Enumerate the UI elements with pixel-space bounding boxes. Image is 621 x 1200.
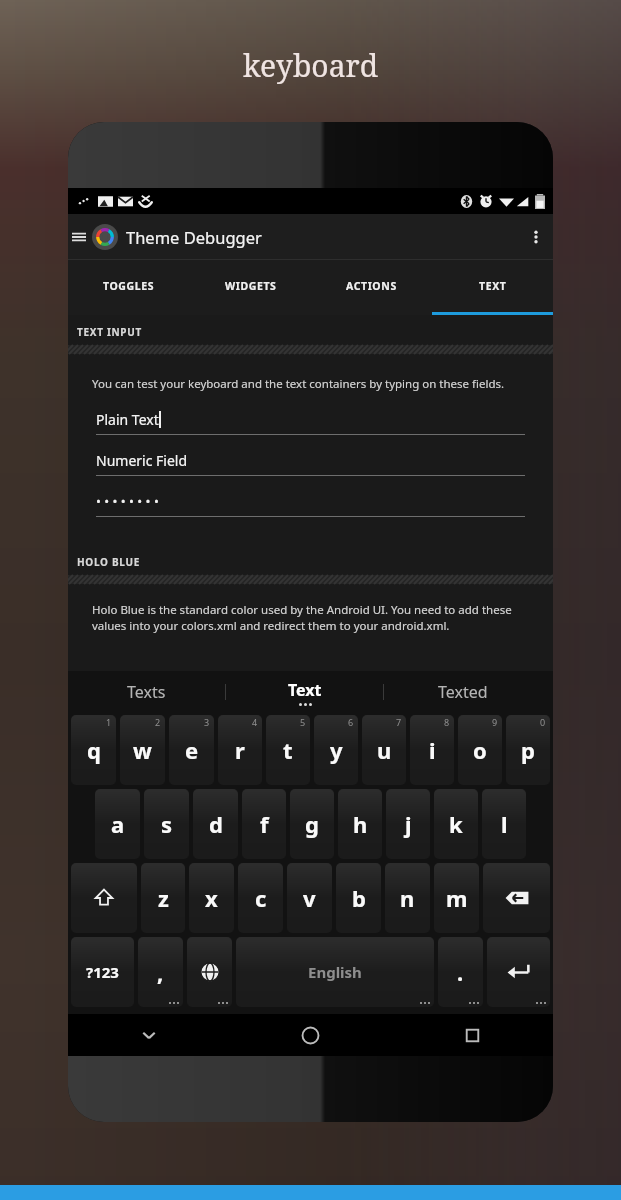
staticText: ACTIONS	[346, 279, 397, 293]
staticText: q	[87, 735, 101, 765]
staticText: TEXT	[479, 279, 507, 293]
staticText: k	[449, 809, 463, 839]
staticText: 1	[106, 716, 112, 728]
staticText: u	[377, 735, 392, 765]
button[interactable]: k	[434, 789, 478, 859]
button[interactable]: b	[336, 863, 381, 933]
button[interactable]: • • • • • • • •	[96, 486, 525, 516]
button[interactable]: Text	[226, 671, 383, 713]
staticText: m	[446, 883, 468, 913]
staticText: 5	[300, 716, 306, 728]
button[interactable]: x	[189, 863, 234, 933]
button[interactable]: Recents	[391, 1014, 553, 1056]
button[interactable]: s	[144, 789, 189, 859]
staticText: Theme Debugger	[126, 226, 262, 248]
staticText: Plain Text	[96, 410, 159, 429]
staticText: v	[303, 883, 316, 913]
staticText: y	[330, 735, 343, 765]
button[interactable]: z	[141, 863, 185, 933]
button[interactable]: j	[386, 789, 430, 859]
button[interactable]: Navigation drawer	[68, 214, 90, 259]
button[interactable]: 6	[314, 715, 358, 785]
button[interactable]: 5	[266, 715, 310, 785]
staticText: j	[405, 809, 412, 839]
button[interactable]: a	[95, 789, 140, 859]
button[interactable]: Backspace	[483, 863, 550, 933]
button[interactable]: v	[287, 863, 332, 933]
button[interactable]: f	[242, 789, 286, 859]
button[interactable]: n	[385, 863, 430, 933]
button[interactable]: g	[290, 789, 334, 859]
staticText: HOLO BLUE	[77, 555, 141, 569]
button[interactable]: TOGGLES	[68, 260, 190, 312]
staticText: p	[521, 735, 535, 765]
button[interactable]: m	[434, 863, 479, 933]
staticText: r	[235, 735, 245, 765]
button[interactable]: Enter	[487, 937, 550, 1007]
staticText: g	[305, 809, 319, 839]
staticText: a	[111, 809, 125, 839]
staticText: b	[352, 883, 366, 913]
staticText: z	[158, 883, 169, 913]
staticText: t	[283, 735, 293, 765]
staticText: 3	[204, 716, 210, 728]
button[interactable]: More options	[519, 214, 553, 259]
staticText: keyboard	[243, 45, 379, 86]
button[interactable]: .	[438, 937, 483, 1007]
button[interactable]: Texts	[68, 671, 225, 713]
button[interactable]: English	[236, 937, 434, 1007]
staticText: n	[400, 883, 415, 913]
staticText: o	[473, 735, 487, 765]
staticText: 4	[252, 716, 258, 728]
button[interactable]: Texted	[384, 671, 541, 713]
staticText: Holo Blue is the standard color used by …	[92, 602, 529, 633]
button[interactable]: Hide keyboard	[68, 1014, 229, 1056]
staticText: i	[429, 735, 436, 765]
button[interactable]: Shift	[71, 863, 137, 933]
staticText: .	[457, 957, 464, 987]
button[interactable]: 4	[218, 715, 262, 785]
staticText: d	[209, 809, 223, 839]
staticText: Text	[288, 679, 322, 701]
button[interactable]: Change language	[187, 937, 232, 1007]
button[interactable]: 7	[362, 715, 406, 785]
button[interactable]: c	[238, 863, 283, 933]
button[interactable]: h	[338, 789, 382, 859]
staticText: h	[353, 809, 368, 839]
button[interactable]: 8	[410, 715, 454, 785]
staticText: l	[501, 809, 508, 839]
staticText: WIDGETS	[225, 279, 277, 293]
staticText: Texts	[127, 681, 166, 703]
staticText: 6	[348, 716, 354, 728]
staticText: TEXT INPUT	[77, 325, 142, 339]
button[interactable]: l	[482, 789, 526, 859]
staticText: f	[260, 809, 269, 839]
button[interactable]: ?123	[71, 937, 134, 1007]
staticText: • • • • • • • •	[96, 492, 159, 510]
button[interactable]: ,	[138, 937, 183, 1007]
staticText: 7	[396, 716, 402, 728]
staticText: 2	[155, 716, 161, 728]
button[interactable]: 9	[458, 715, 502, 785]
staticText: English	[308, 962, 362, 982]
staticText: 8	[444, 716, 450, 728]
button[interactable]: TEXT	[432, 260, 553, 312]
button[interactable]: d	[193, 789, 238, 859]
staticText: TOGGLES	[103, 279, 155, 293]
button[interactable]: Numeric Field	[96, 445, 525, 475]
staticText: Texted	[438, 681, 488, 703]
button[interactable]: Home	[229, 1014, 391, 1056]
button[interactable]: 3	[169, 715, 214, 785]
staticText: s	[161, 809, 173, 839]
button[interactable]: ACTIONS	[311, 260, 432, 312]
staticText: You can test your keyboard and the text …	[92, 376, 505, 392]
staticText: w	[133, 735, 152, 765]
button[interactable]: WIDGETS	[190, 260, 311, 312]
staticText: x	[205, 883, 218, 913]
button[interactable]: 1	[71, 715, 116, 785]
button[interactable]: 2	[120, 715, 165, 785]
staticText: ,	[157, 957, 164, 987]
staticText: Numeric Field	[96, 451, 188, 470]
button[interactable]: 0	[506, 715, 550, 785]
button[interactable]: Plain Text	[96, 404, 525, 434]
